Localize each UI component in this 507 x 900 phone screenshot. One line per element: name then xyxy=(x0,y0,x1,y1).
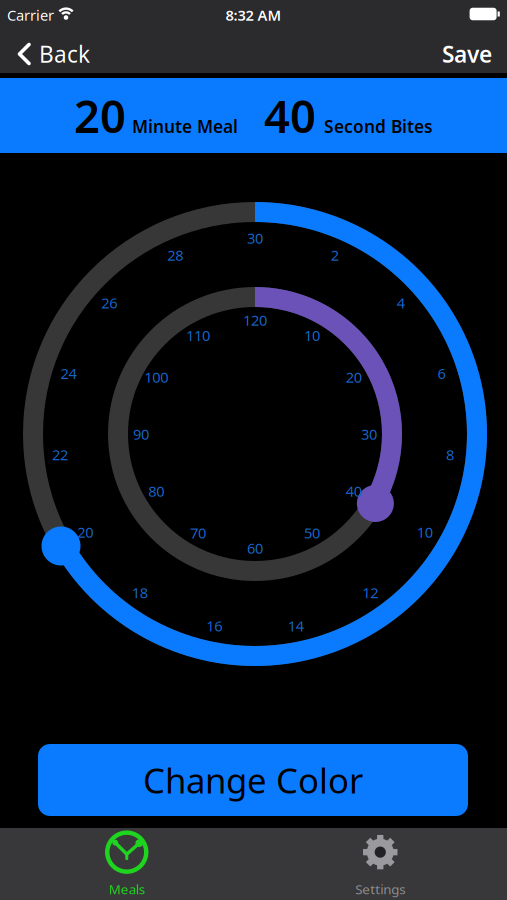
staticText: 8 xyxy=(446,445,454,464)
staticText: 10 xyxy=(304,325,320,345)
staticText: 30 xyxy=(247,228,263,248)
staticText: 8:32 AM xyxy=(225,5,281,25)
staticText: 100 xyxy=(144,367,168,387)
staticText: 30 xyxy=(361,424,377,444)
staticText: 28 xyxy=(167,245,183,265)
staticText: 6 xyxy=(437,364,445,383)
staticText: 18 xyxy=(132,583,148,602)
button[interactable]: Meals xyxy=(0,828,253,900)
button[interactable]: Settings xyxy=(253,828,507,900)
staticText: 40 xyxy=(264,85,316,146)
staticText: 22 xyxy=(52,445,68,464)
staticText: 70 xyxy=(190,523,206,542)
staticText: 40 xyxy=(346,481,362,501)
staticText: 120 xyxy=(243,310,267,330)
staticText: 80 xyxy=(148,481,164,501)
staticText: 110 xyxy=(186,325,210,345)
staticText: 24 xyxy=(61,364,77,383)
staticText: Save xyxy=(442,39,492,69)
staticText: 26 xyxy=(101,293,117,313)
staticText: Settings xyxy=(355,880,405,898)
staticText: 16 xyxy=(206,616,222,635)
staticText: 12 xyxy=(362,583,378,602)
button[interactable]: Save xyxy=(442,39,492,69)
staticText: 2 xyxy=(331,245,339,265)
staticText: 50 xyxy=(304,523,320,542)
staticText: 4 xyxy=(397,293,405,313)
staticText: Carrier xyxy=(7,5,54,25)
staticText: 14 xyxy=(288,616,304,635)
button[interactable]: Change Color xyxy=(38,744,468,816)
staticText: 60 xyxy=(247,538,263,558)
staticText: 90 xyxy=(133,424,149,444)
staticText: 20 xyxy=(346,367,362,387)
staticText: Second Bites xyxy=(324,115,433,138)
staticText: Change Color xyxy=(143,757,363,803)
staticText: 20 xyxy=(77,522,93,542)
staticText: Back xyxy=(39,39,90,69)
staticText: 20 xyxy=(74,85,126,146)
button[interactable]: Back xyxy=(18,39,90,69)
staticText: 10 xyxy=(417,522,433,542)
staticText: Minute Meal xyxy=(132,115,238,138)
staticText: Meals xyxy=(109,880,145,898)
